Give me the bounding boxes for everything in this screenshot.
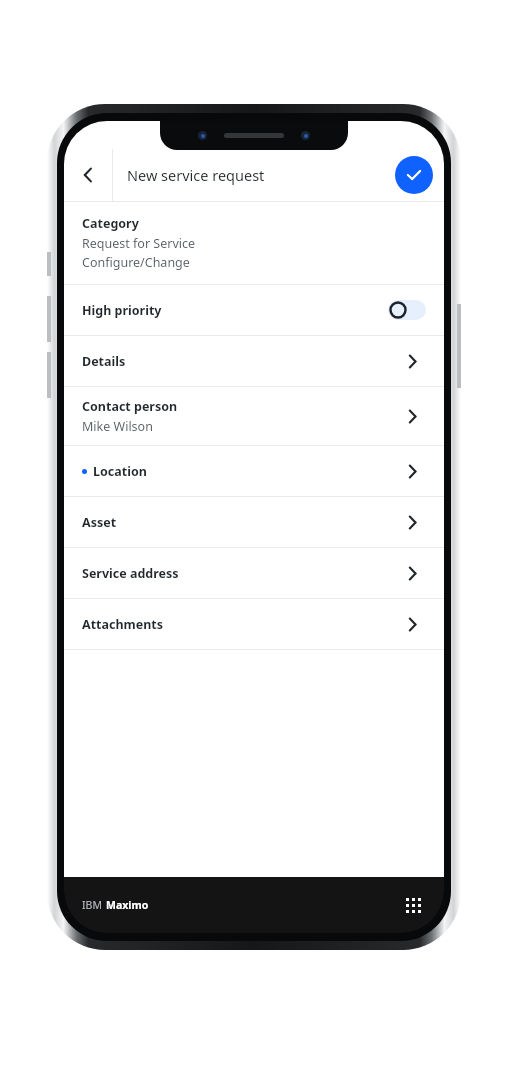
- button[interactable]: Back: [64, 149, 112, 201]
- staticText: Details: [82, 353, 126, 370]
- staticText: Maximo: [106, 898, 149, 912]
- button[interactable]: High priority: [64, 285, 444, 335]
- button[interactable]: Location: [64, 446, 444, 496]
- button[interactable]: Asset: [64, 497, 444, 547]
- staticText: Asset: [82, 514, 117, 531]
- staticText: High priority: [82, 302, 162, 319]
- button[interactable]: Contact person: [64, 387, 444, 445]
- staticText: Mike Wilson: [82, 418, 153, 435]
- staticText: Request for Service: [82, 235, 196, 252]
- staticText: Service address: [82, 565, 179, 582]
- staticText: Category: [82, 215, 139, 232]
- button[interactable]: Details: [64, 336, 444, 386]
- staticText: Configure/Change: [82, 254, 190, 271]
- button[interactable]: Attachments: [64, 599, 444, 649]
- staticText: New service request: [127, 165, 265, 185]
- button[interactable]: Service address: [64, 548, 444, 598]
- staticText: Attachments: [82, 616, 164, 633]
- button[interactable]: App menu: [400, 892, 426, 918]
- staticText: IBM: [82, 898, 102, 912]
- staticText: Location: [93, 463, 147, 480]
- button[interactable]: Category: [64, 202, 444, 284]
- button[interactable]: Save: [395, 156, 433, 194]
- staticText: Contact person: [82, 398, 178, 415]
